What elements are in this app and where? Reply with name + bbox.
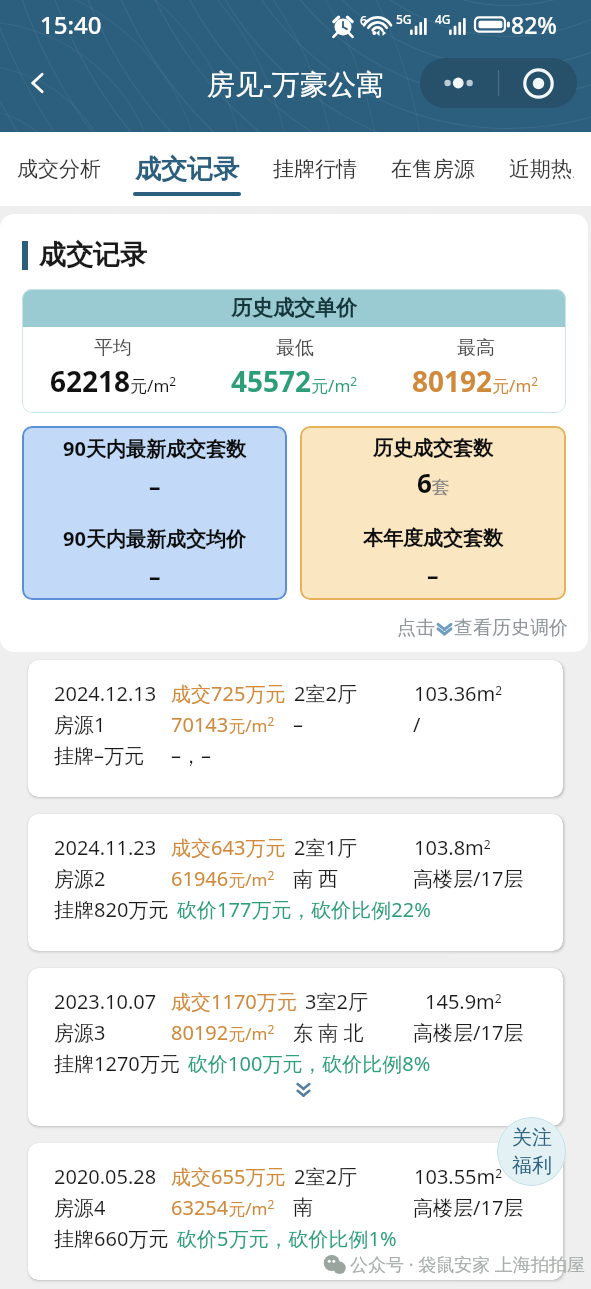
staticText: 15:40 xyxy=(40,8,102,41)
button[interactable]: 关注 xyxy=(497,1117,566,1186)
staticText: 点击 xyxy=(397,616,435,640)
staticText: 90天内最新成交套数 xyxy=(63,435,246,462)
staticText: 平均 xyxy=(94,336,132,360)
staticText: 历史成交单价 xyxy=(231,295,357,321)
staticText: 高楼层/17层 xyxy=(413,1194,524,1221)
staticText: – xyxy=(149,470,161,501)
staticText: 东 南 北 xyxy=(293,1019,364,1046)
button[interactable]: 近期热度 xyxy=(492,132,591,206)
staticText: 南 xyxy=(293,1195,313,1220)
staticText: 房源2 xyxy=(54,865,106,892)
staticText: 80192元/m2 xyxy=(412,362,539,400)
staticText: 高楼层/17层 xyxy=(413,865,524,892)
staticText: 成交725万元 xyxy=(171,680,286,707)
button[interactable]: 2023.10.07 xyxy=(28,968,563,1126)
staticText: 成交655万元 xyxy=(171,1163,286,1190)
button[interactable]: 挂牌行情 xyxy=(256,132,374,206)
button[interactable]: Show more records xyxy=(283,1079,323,1100)
staticText: 砍价177万元，砍价比例22% xyxy=(177,896,431,923)
staticText: 3室2厅 xyxy=(305,988,368,1015)
staticText: 成交记录 xyxy=(135,153,239,186)
staticText: 45572元/m2 xyxy=(231,362,358,400)
button[interactable]: Back xyxy=(0,51,76,115)
staticText: – xyxy=(427,559,439,590)
staticText: 2室1厅 xyxy=(294,834,357,861)
staticText: 砍价100万元，砍价比例8% xyxy=(188,1050,431,1077)
staticText: 近期热度 xyxy=(509,156,574,182)
button[interactable]: 2024.12.13 xyxy=(28,660,563,797)
staticText: 砍价5万元，砍价比例1% xyxy=(177,1225,397,1252)
staticText: 4G xyxy=(435,11,451,27)
staticText: 成交643万元 xyxy=(171,834,286,861)
button[interactable]: More options xyxy=(420,58,498,108)
staticText: 成交1170万元 xyxy=(171,988,297,1015)
button[interactable]: 在售房源 xyxy=(374,132,492,206)
staticText: 62218元/m2 xyxy=(50,362,177,400)
staticText: 南 西 xyxy=(293,865,339,892)
staticText: 最低 xyxy=(276,336,314,360)
button[interactable]: 成交记录 xyxy=(118,132,256,206)
staticText: 63254元/m2 xyxy=(171,1194,275,1221)
button[interactable]: Close mini program xyxy=(499,58,577,108)
staticText: 历史成交套数 xyxy=(373,436,493,461)
staticText: / xyxy=(413,711,421,738)
staticText: 挂牌660万元 xyxy=(54,1225,169,1252)
staticText: 查看历史调价 xyxy=(454,616,568,640)
button[interactable]: 成交分析 xyxy=(0,132,118,206)
staticText: 2024.12.13 xyxy=(54,680,157,707)
staticText: 103.55m2 xyxy=(414,1163,503,1190)
staticText: 2室2厅 xyxy=(294,680,357,707)
staticText: 高楼层/17层 xyxy=(413,1019,524,1046)
staticText: 2室2厅 xyxy=(294,1163,357,1190)
staticText: 房见-万豪公寓 xyxy=(207,64,384,102)
staticText: 2020.05.28 xyxy=(54,1163,157,1190)
staticText: 成交分析 xyxy=(17,156,101,182)
staticText: 90天内最新成交均价 xyxy=(63,525,246,552)
staticText: 6套 xyxy=(417,465,450,500)
staticText: 6 xyxy=(360,12,367,28)
staticText: 2024.11.23 xyxy=(54,834,157,861)
button[interactable]: 2020.05.28 xyxy=(28,1143,563,1280)
staticText: 82% xyxy=(511,9,557,40)
staticText: – xyxy=(293,711,303,738)
staticText: 关注 xyxy=(512,1125,552,1150)
staticText: 80192元/m2 xyxy=(171,1019,275,1046)
staticText: 2023.10.07 xyxy=(54,988,157,1015)
staticText: 房源4 xyxy=(54,1194,106,1221)
staticText: 房源1 xyxy=(54,711,106,738)
button[interactable]: 点击 xyxy=(397,613,568,643)
staticText: 103.8m2 xyxy=(414,834,491,861)
staticText: 5G xyxy=(396,11,412,27)
staticText: 145.9m2 xyxy=(425,988,502,1015)
staticText: 61946元/m2 xyxy=(171,865,275,892)
staticText: 70143元/m2 xyxy=(171,711,275,738)
staticText: 挂牌1270万元 xyxy=(54,1050,180,1077)
staticText: 挂牌820万元 xyxy=(54,896,169,923)
staticText: –，– xyxy=(171,742,211,769)
staticText: 103.36m2 xyxy=(414,680,503,707)
staticText: 房源3 xyxy=(54,1019,106,1046)
staticText: 挂牌行情 xyxy=(273,156,357,182)
staticText: 挂牌–万元 xyxy=(54,742,144,769)
staticText: 公众号 · 袋鼠安家 上海拍拍屋 xyxy=(350,1252,585,1277)
button[interactable]: 2024.11.23 xyxy=(28,814,563,951)
staticText: 在售房源 xyxy=(391,156,475,182)
staticText: 本年度成交套数 xyxy=(363,526,503,551)
staticText: 成交记录 xyxy=(39,238,147,272)
staticText: 福利 xyxy=(512,1153,552,1178)
staticText: 最高 xyxy=(457,336,495,360)
staticText: – xyxy=(149,560,161,591)
